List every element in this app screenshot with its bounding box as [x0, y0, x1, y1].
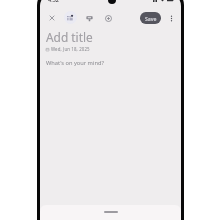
button[interactable]: Checklist	[63, 11, 77, 25]
staticText: Wed, Jun 18, 2025	[51, 46, 90, 52]
button[interactable]: Close	[45, 11, 59, 25]
button[interactable]: What's on your mind?	[40, 55, 181, 195]
button[interactable]: More options	[164, 11, 178, 25]
staticText: What's on your mind?	[46, 59, 104, 67]
button[interactable]: Add	[101, 11, 115, 25]
staticText: 4:32	[48, 0, 59, 3]
staticText: Save	[145, 15, 157, 22]
button[interactable]: Save	[140, 12, 161, 24]
button[interactable]: Pin	[82, 11, 96, 25]
staticText: Add title	[46, 29, 93, 45]
button[interactable]: Add title	[40, 29, 181, 45]
